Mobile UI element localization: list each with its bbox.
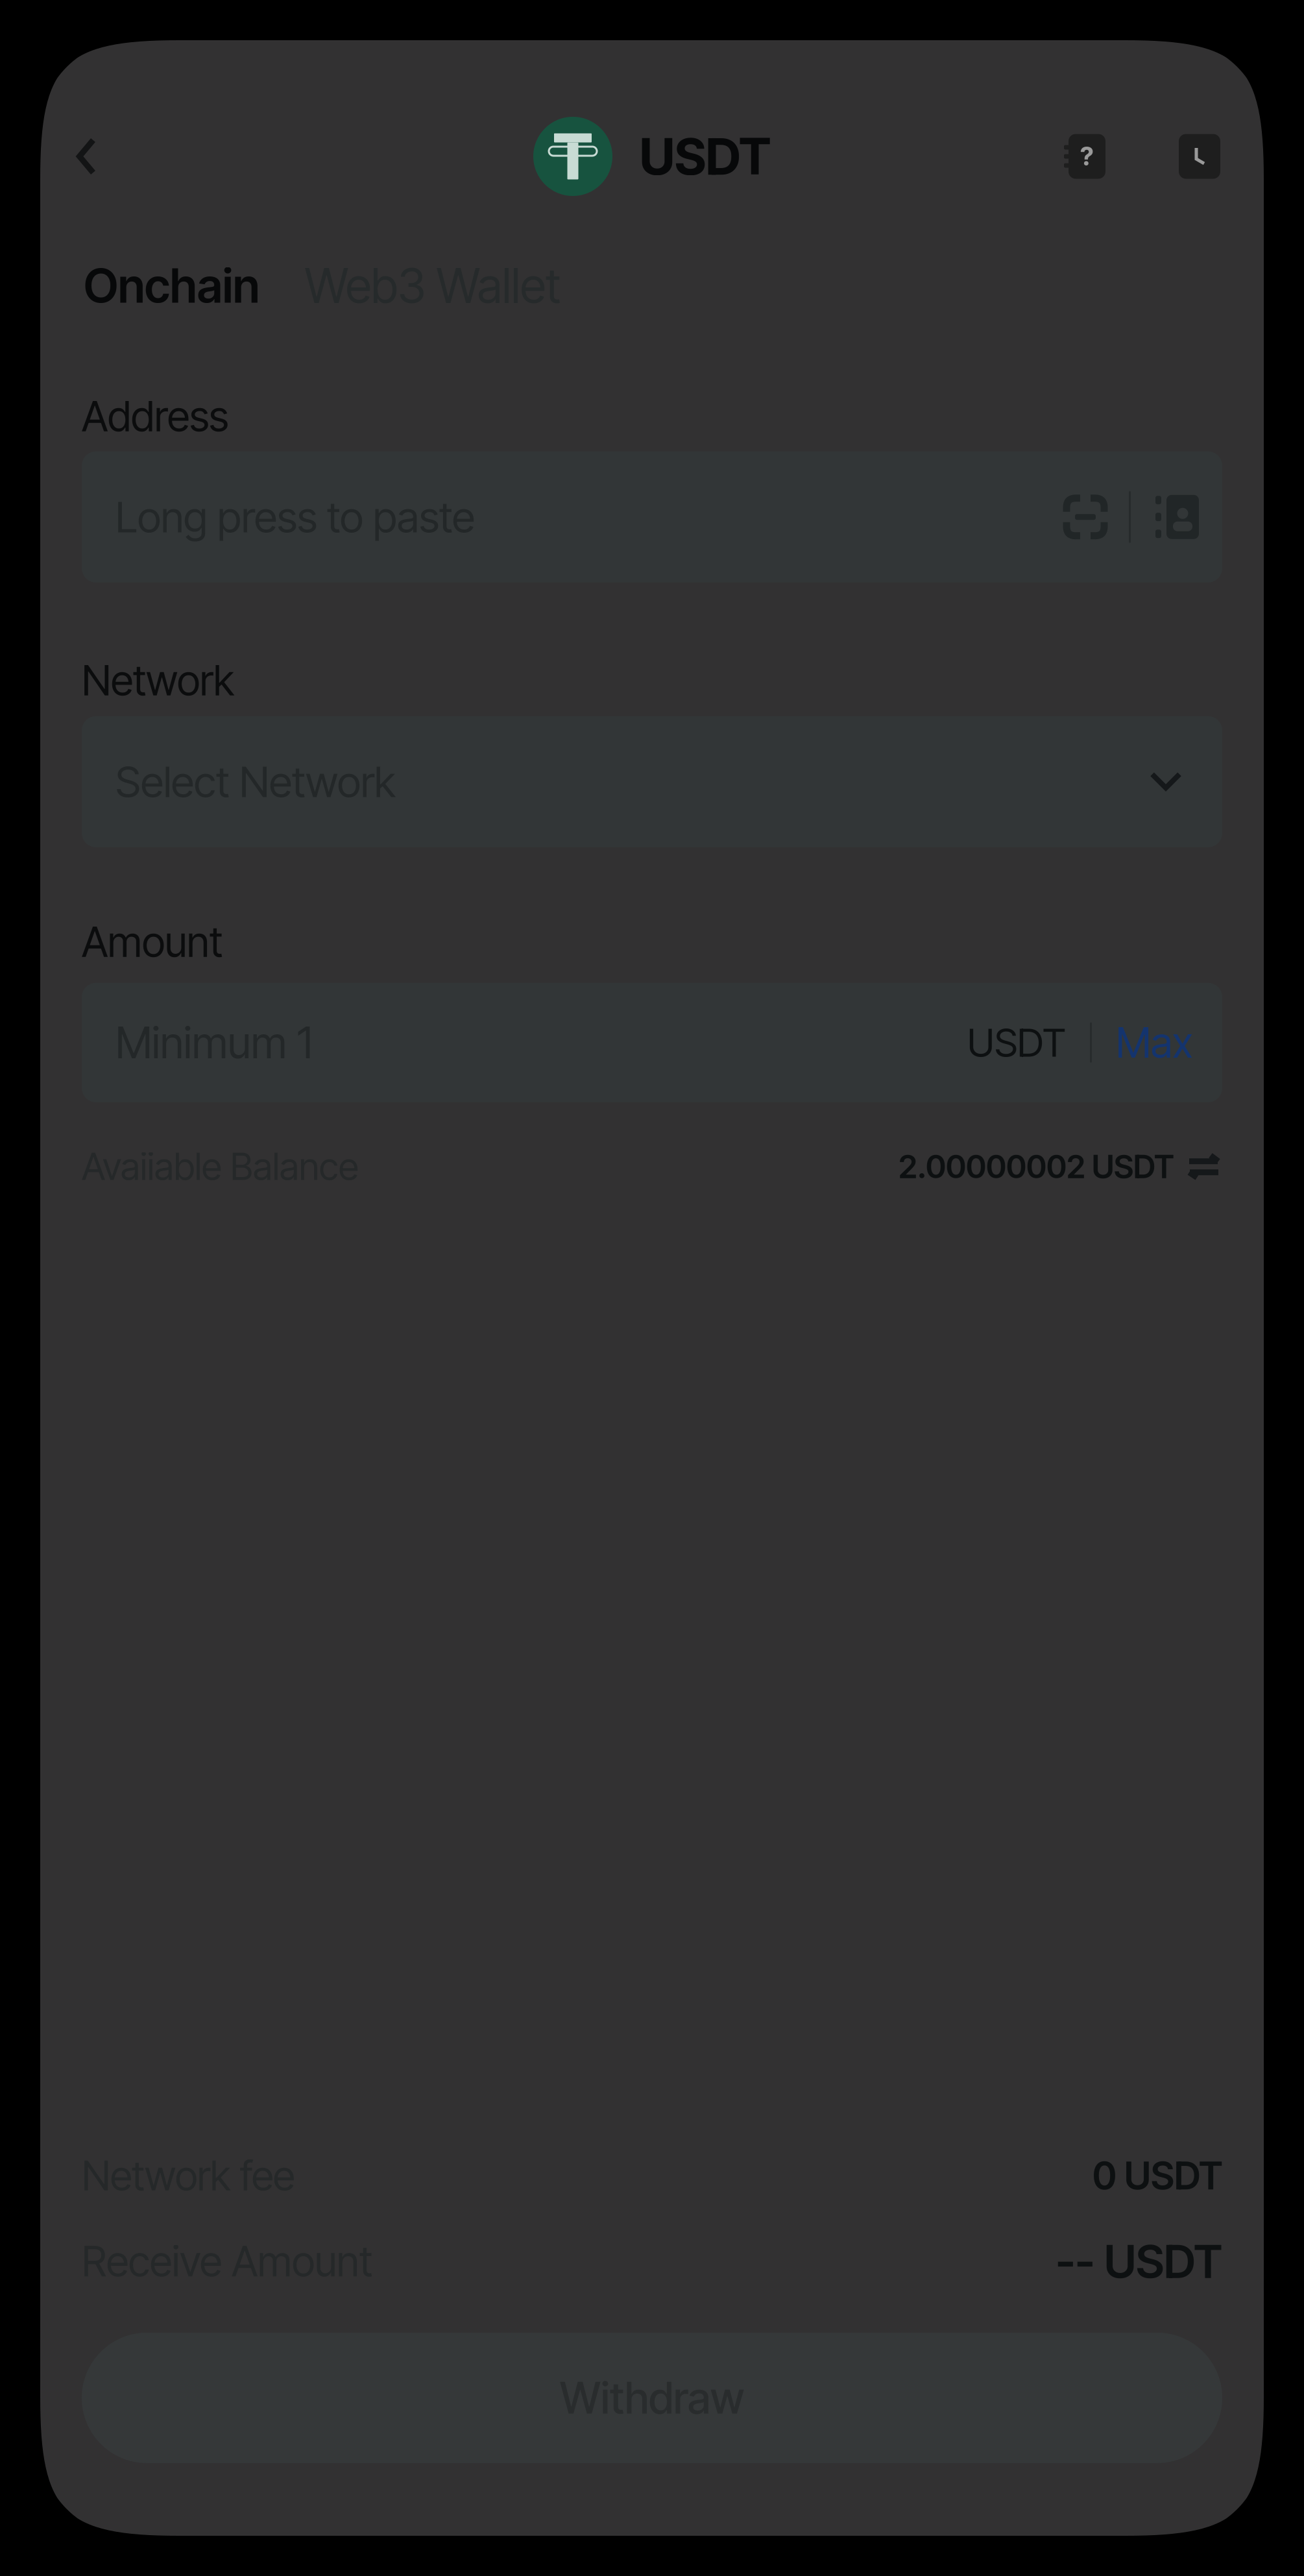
staticText: Long press to paste	[115, 491, 475, 543]
staticText: Onchain	[84, 257, 260, 314]
staticText: Avaiiable Balance	[82, 1144, 359, 1189]
staticText: USDT	[640, 126, 771, 187]
button[interactable]: Switch unit	[1174, 1153, 1222, 1180]
button[interactable]: Address book	[1155, 495, 1199, 539]
staticText: Minimum 1	[115, 1016, 313, 1069]
button[interactable]: Max	[1116, 1017, 1193, 1068]
button[interactable]: Onchain	[67, 243, 276, 328]
staticText: Network	[82, 655, 234, 688]
staticText: Address	[82, 391, 228, 424]
staticText: ?	[1080, 141, 1094, 172]
staticText: Withdraw	[560, 2372, 744, 2424]
staticText: Receive Amount	[82, 2236, 372, 2286]
button[interactable]: Transaction history	[1179, 134, 1220, 179]
button[interactable]: Back	[40, 121, 132, 192]
staticText: Network fee	[82, 2151, 295, 2200]
button[interactable]: Help	[1061, 134, 1108, 179]
staticText: 2.00000002 USDT	[899, 1147, 1174, 1186]
staticText: USDT	[967, 1019, 1066, 1066]
staticText: Select Network	[115, 756, 395, 807]
staticText: -- USDT	[1056, 2234, 1222, 2289]
staticText: Web3 Wallet	[305, 257, 561, 315]
staticText: 0 USDT	[1093, 2153, 1222, 2199]
staticText: Max	[1116, 1017, 1193, 1068]
button[interactable]: Web3 Wallet	[288, 243, 577, 329]
button[interactable]: Scan QR code	[1067, 498, 1104, 536]
staticText: Amount	[82, 917, 223, 949]
